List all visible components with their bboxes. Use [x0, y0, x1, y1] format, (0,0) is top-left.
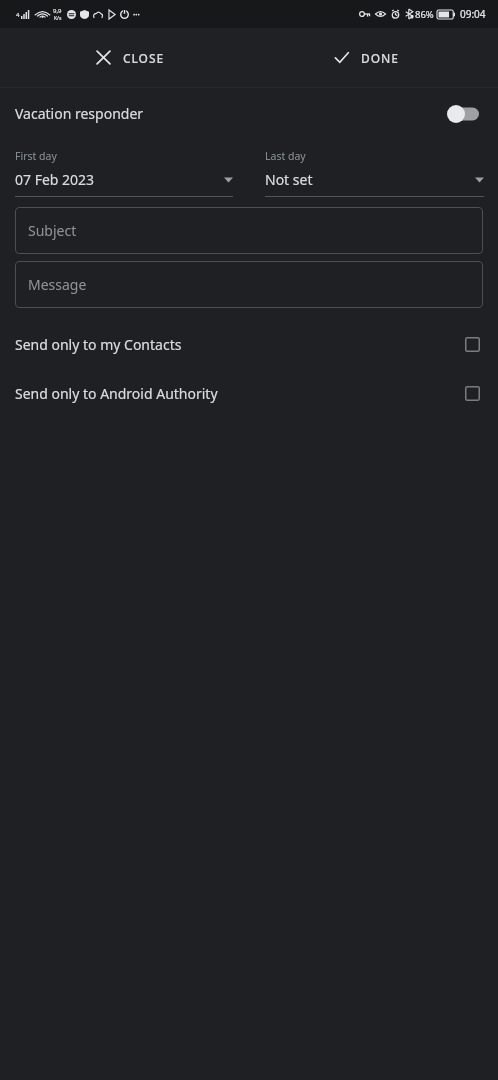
button[interactable]: Last day: [249, 139, 498, 197]
staticText: Subject: [28, 221, 77, 240]
staticText: Send only to Android Authority: [15, 384, 218, 403]
staticText: 86%: [415, 8, 434, 21]
staticText: •••: [133, 11, 140, 19]
button[interactable]: Send only to Android Authority: [0, 369, 498, 418]
button[interactable]: Message: [15, 261, 483, 308]
button[interactable]: DONE: [333, 49, 399, 66]
button[interactable]: Send only to my Contacts: [0, 320, 498, 369]
staticText: Send only to my Contacts: [15, 335, 182, 354]
staticText: 07 Feb 2023: [15, 170, 95, 189]
button[interactable]: Send only to Android Authority: [464, 385, 481, 402]
staticText: 4: [16, 11, 20, 19]
button[interactable]: First day: [0, 139, 249, 197]
staticText: Last day: [265, 149, 306, 163]
button[interactable]: Vacation responder: [0, 88, 498, 139]
staticText: 09:04: [460, 7, 486, 21]
staticText: DONE: [361, 50, 399, 66]
staticText: Not set: [265, 170, 313, 189]
staticText: K/s: [54, 15, 62, 22]
staticText: Vacation responder: [15, 104, 144, 123]
staticText: CLOSE: [123, 50, 164, 66]
staticText: 9,9: [53, 7, 62, 15]
staticText: Message: [28, 275, 87, 294]
staticText: First day: [15, 149, 57, 163]
button[interactable]: Send only to my Contacts: [464, 336, 481, 353]
button[interactable]: Subject: [15, 207, 483, 254]
button[interactable]: Vacation responder toggle: [445, 104, 481, 124]
button[interactable]: CLOSE: [95, 49, 164, 66]
